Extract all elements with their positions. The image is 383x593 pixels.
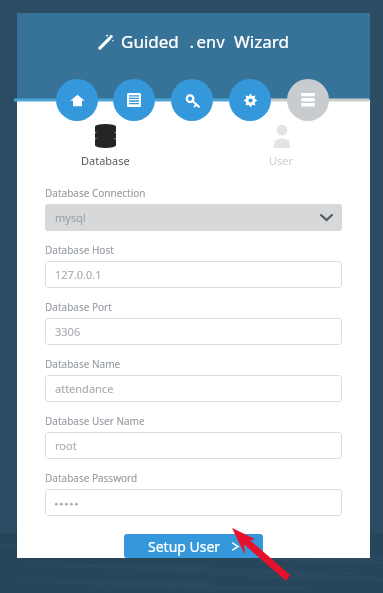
- staticText: User: [269, 153, 294, 168]
- staticText: Database Host: [45, 243, 114, 257]
- staticText: Database Password: [45, 471, 138, 485]
- staticText: mysql: [55, 210, 86, 225]
- staticText: Setup User: [148, 537, 221, 556]
- button[interactable]: User: [193, 124, 370, 168]
- button[interactable]: Database: [17, 124, 193, 168]
- button[interactable]: attendance: [45, 375, 342, 402]
- button[interactable]: Environment step: [229, 79, 271, 121]
- staticText: attendance: [55, 381, 114, 396]
- staticText: 3306: [55, 324, 81, 339]
- staticText: Database Name: [45, 357, 121, 371]
- staticText: 127.0.0.1: [55, 267, 102, 282]
- button[interactable]: Requirements step: [113, 79, 155, 121]
- button[interactable]: Database step: [287, 79, 329, 121]
- button[interactable]: 127.0.0.1: [45, 261, 342, 288]
- staticText: Guided: [121, 30, 179, 53]
- button[interactable]: Setup User: [124, 534, 263, 558]
- staticText: .env: [187, 31, 226, 53]
- staticText: Database Connection: [45, 186, 146, 200]
- button[interactable]: root: [45, 432, 342, 459]
- button[interactable]: Home step: [56, 79, 98, 121]
- staticText: root: [55, 438, 77, 453]
- button[interactable]: mysql: [45, 204, 342, 231]
- staticText: Database: [81, 153, 130, 168]
- button[interactable]: Permissions step: [171, 79, 213, 121]
- staticText: Database User Name: [45, 414, 145, 428]
- staticText: Wizard: [234, 30, 289, 53]
- button[interactable]: 3306: [45, 318, 342, 345]
- staticText: Database Port: [45, 300, 112, 314]
- button[interactable]: [45, 489, 342, 516]
